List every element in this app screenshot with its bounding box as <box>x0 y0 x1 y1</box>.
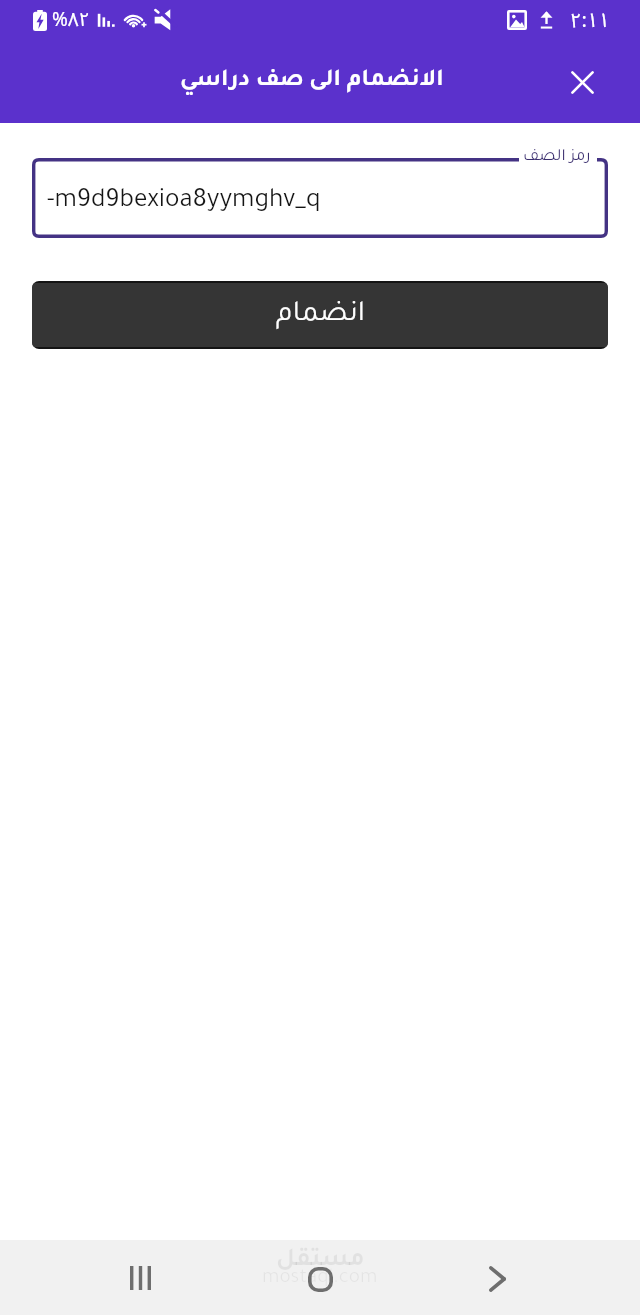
button[interactable]: Back <box>473 1255 521 1303</box>
button[interactable]: -m9d9bexioa8yymghv_q <box>32 158 608 238</box>
staticText: انضمام <box>276 301 365 330</box>
staticText: الانضمام الى صف دراسي <box>180 70 444 94</box>
staticText: %٨٢ <box>52 0 90 40</box>
staticText: ٢:١١ <box>570 0 610 40</box>
staticText: رمز الصف <box>523 149 591 166</box>
button[interactable]: Close <box>560 60 604 104</box>
button[interactable]: انضمام <box>32 281 608 349</box>
staticText: مستقل <box>276 1248 365 1274</box>
staticText: mostaql.com <box>262 1268 378 1289</box>
staticText: -m9d9bexioa8yymghv_q <box>47 189 321 216</box>
button[interactable]: Home <box>296 1255 344 1303</box>
button[interactable]: Recent apps <box>116 1254 164 1302</box>
